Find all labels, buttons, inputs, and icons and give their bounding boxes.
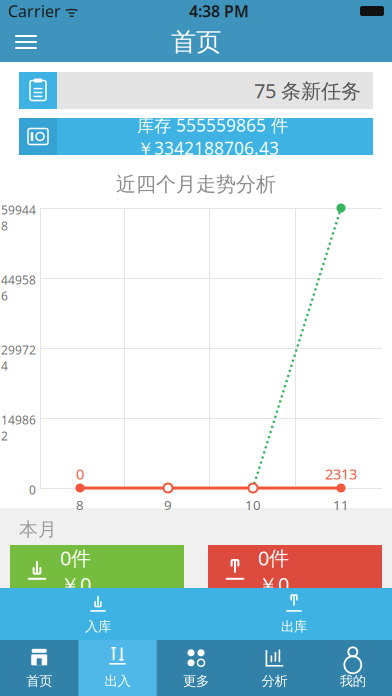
- button[interactable]: 我的: [314, 640, 392, 696]
- staticText: 0件: [258, 544, 289, 571]
- staticText: 10: [245, 496, 261, 514]
- staticText: 出入: [105, 673, 131, 689]
- staticText: 0件: [60, 544, 91, 571]
- staticText: ￥0: [60, 571, 91, 598]
- staticText: ᯤ: [61, 1, 78, 21]
- staticText: 0: [76, 464, 84, 483]
- staticText: 449586: [1, 272, 36, 304]
- staticText: 首页: [171, 26, 221, 57]
- staticText: 首页: [26, 673, 52, 689]
- staticText: 本月: [19, 518, 57, 541]
- button[interactable]: Menu: [4, 22, 48, 62]
- staticText: 分析: [261, 673, 287, 689]
- button[interactable]: 75 条新任务: [19, 72, 373, 109]
- button[interactable]: 分析: [235, 640, 314, 696]
- button[interactable]: 出库: [196, 588, 392, 640]
- staticText: 9: [164, 496, 172, 514]
- staticText: 75 条新任务: [254, 77, 361, 104]
- staticText: 我的: [340, 673, 366, 689]
- button[interactable]: 0件: [208, 545, 382, 597]
- button[interactable]: 首页: [0, 640, 78, 696]
- button[interactable]: 出入: [78, 640, 157, 696]
- staticText: 库存 555559865 件 ￥3342188706.43: [137, 113, 293, 159]
- button[interactable]: 更多: [157, 640, 235, 696]
- staticText: 近四个月走势分析: [116, 172, 276, 197]
- button[interactable]: 入库: [0, 588, 196, 640]
- staticText: 4:38 PM: [189, 0, 249, 22]
- staticText: 更多: [183, 673, 209, 689]
- staticText: Carrier: [8, 0, 61, 22]
- staticText: 0: [29, 482, 36, 498]
- staticText: 149862: [1, 412, 36, 444]
- staticText: 2313: [325, 464, 357, 483]
- staticText: 299724: [1, 342, 36, 374]
- staticText: 出库: [281, 618, 307, 635]
- staticText: ￥0: [258, 571, 289, 598]
- button[interactable]: 0件: [10, 545, 184, 597]
- button[interactable]: 库存 555559865 件 ￥3342188706.43: [19, 118, 373, 155]
- staticText: 11: [333, 496, 349, 514]
- staticText: 入库: [85, 618, 111, 635]
- staticText: 599448: [1, 202, 36, 234]
- staticText: 8: [76, 496, 84, 514]
